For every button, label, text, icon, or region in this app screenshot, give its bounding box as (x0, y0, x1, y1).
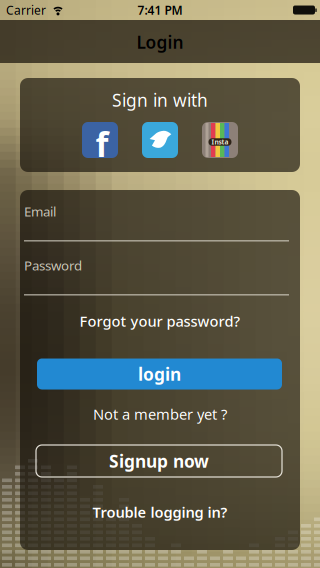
staticText: Signup now (109, 449, 209, 472)
staticText: Carrier (6, 2, 46, 18)
staticText: Insta (211, 138, 228, 146)
staticText: Email (24, 203, 56, 220)
button[interactable]: Sign in with Instagram (202, 122, 238, 158)
button[interactable]: Forgot your password? (79, 311, 240, 331)
staticText: Not a member yet ? (93, 404, 227, 424)
staticText: 7:41 PM (137, 2, 182, 18)
staticText: f (95, 122, 108, 166)
staticText: Password (24, 257, 82, 274)
button[interactable]: Signup now (36, 445, 282, 477)
button[interactable]: Sign in with Twitter (142, 122, 178, 158)
button[interactable]: Password (24, 257, 289, 295)
staticText: Sign in with (112, 88, 208, 111)
staticText: Forgot your password? (79, 311, 240, 331)
staticText: login (138, 362, 181, 385)
button[interactable]: login (37, 358, 282, 389)
staticText: Login (136, 30, 183, 53)
button[interactable]: Sign in with Facebook (82, 122, 118, 158)
button[interactable]: Trouble logging in? (92, 502, 227, 522)
staticText: Trouble logging in? (92, 502, 227, 522)
button[interactable]: Email (24, 203, 289, 241)
